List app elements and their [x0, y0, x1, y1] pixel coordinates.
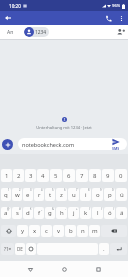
button[interactable]: ü [116, 188, 127, 201]
button[interactable]: Zurück [23, 262, 37, 276]
staticText: k [84, 209, 88, 217]
staticText: ä [120, 209, 124, 217]
button[interactable]: ?1¤ [1, 243, 14, 255]
staticText: v [57, 227, 61, 235]
button[interactable]: Zurück [0, 11, 16, 25]
button[interactable]: ( [80, 207, 91, 219]
button[interactable]: Empfänger hinzufügen [113, 25, 128, 39]
button[interactable]: 0 [115, 169, 127, 182]
staticText: 2 [19, 188, 21, 192]
button[interactable]: 3 [25, 169, 36, 182]
button[interactable]: 6 [63, 169, 75, 182]
staticText: 10:20 [9, 3, 21, 9]
button[interactable]: m [89, 225, 100, 237]
staticText: l [97, 209, 99, 217]
button[interactable]: Übersicht [91, 262, 105, 276]
staticText: c [45, 227, 48, 235]
staticText: 5 [54, 172, 58, 180]
button[interactable]: _ [34, 207, 44, 219]
button[interactable]: 1234 [24, 27, 49, 37]
button[interactable]: Umschalttaste [1, 225, 16, 237]
staticText: 9 [100, 188, 102, 192]
staticText: - [65, 207, 66, 211]
button[interactable]: 9 [92, 188, 103, 201]
button[interactable]: Anrufen [101, 11, 115, 25]
button[interactable]: 2 [13, 169, 24, 182]
button[interactable]: ä [116, 207, 127, 219]
staticText: x [33, 227, 37, 235]
staticText: u [72, 191, 76, 199]
button[interactable]: Senden [105, 138, 127, 150]
button[interactable]: v [53, 225, 64, 237]
staticText: p [108, 191, 112, 199]
button[interactable]: - [56, 207, 67, 219]
staticText: ?1¤ [4, 246, 12, 252]
button[interactable]: € [23, 207, 33, 219]
button[interactable]: Startbildschirm [57, 262, 71, 276]
button[interactable]: @ [1, 207, 11, 219]
staticText: r [38, 191, 41, 199]
button[interactable]: 5 [45, 188, 55, 201]
staticText: 1 [5, 172, 9, 180]
button[interactable]: Löschen [101, 225, 127, 237]
staticText: SMS [112, 146, 120, 150]
button[interactable]: 2 [12, 188, 22, 201]
button[interactable]: ) [92, 207, 103, 219]
staticText: y [21, 227, 25, 235]
staticText: j [73, 209, 75, 217]
button[interactable]: Emoji [26, 243, 36, 255]
button[interactable]: 7 [68, 188, 79, 201]
button[interactable]: b [65, 225, 76, 237]
button[interactable]: . [99, 243, 109, 255]
staticText: b [69, 227, 73, 235]
button[interactable]: 9 [102, 169, 114, 182]
button[interactable]: 6 [56, 188, 67, 201]
staticText: a [4, 209, 8, 217]
button[interactable]: 1 [1, 169, 12, 182]
button[interactable]: Eingabe [110, 243, 127, 255]
button[interactable]: 8 [89, 169, 101, 182]
staticText: z [60, 191, 63, 199]
button[interactable]: 4 [34, 188, 44, 201]
button[interactable]: 7 [76, 169, 88, 182]
button[interactable]: 8 [80, 188, 91, 201]
staticText: t [49, 191, 52, 199]
button[interactable]: 0 [104, 188, 115, 201]
button[interactable]: + [68, 207, 79, 219]
button[interactable]: x [29, 225, 40, 237]
staticText: _ [41, 207, 43, 211]
staticText: An [7, 29, 14, 36]
button[interactable]: / [104, 207, 115, 219]
staticText: 8 [88, 188, 90, 192]
button[interactable]: 4 [37, 169, 49, 182]
button[interactable]: DE [15, 243, 25, 255]
staticText: h [60, 209, 64, 217]
button[interactable]: # [12, 207, 22, 219]
staticText: 0 [112, 188, 114, 192]
button[interactable]: 3 [23, 188, 33, 201]
staticText: ö [108, 209, 112, 217]
staticText: 6 [67, 172, 71, 180]
staticText: 4 [41, 172, 45, 180]
button[interactable]: c [41, 225, 52, 237]
staticText: 5 [52, 188, 54, 192]
staticText: e [26, 191, 30, 199]
staticText: 1 [8, 188, 10, 192]
staticText: f [38, 209, 41, 217]
staticText: ( [89, 207, 90, 211]
button[interactable]: & [45, 207, 55, 219]
staticText: 3 [30, 188, 32, 192]
button[interactable]: Anhang hinzufügen [2, 139, 13, 150]
staticText: 7 [76, 188, 78, 192]
staticText: w [15, 191, 20, 199]
button[interactable]: 5 [50, 169, 62, 182]
staticText: 9 [106, 172, 110, 180]
staticText: m [92, 227, 98, 235]
staticText: . [103, 245, 105, 253]
button[interactable]: 1 [1, 188, 11, 201]
button[interactable]: Weitere Optionen [115, 11, 128, 25]
button[interactable]: n [77, 225, 88, 237]
button[interactable]: y [17, 225, 28, 237]
staticText: 96% [112, 3, 121, 9]
